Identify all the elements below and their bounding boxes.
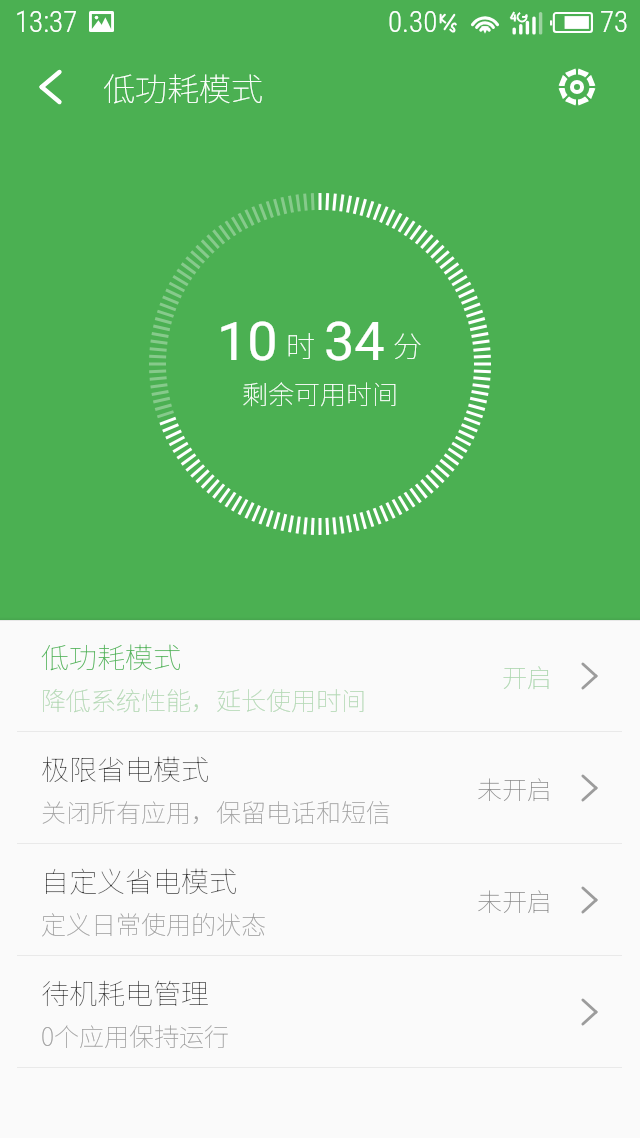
staticText: 0个应用保持运行: [41, 1017, 230, 1053]
staticText: 极限省电模式: [41, 748, 210, 789]
staticText: 时: [286, 323, 316, 365]
staticText: 0.30: [388, 5, 438, 39]
staticText: 定义日常使用的状态: [41, 905, 267, 941]
staticText: 降低系统性能，延长使用时间: [41, 681, 367, 717]
button[interactable]: 低功耗模式: [0, 620, 640, 732]
button[interactable]: Settings: [535, 45, 619, 129]
staticText: 分: [393, 323, 423, 365]
staticText: 剩余可用时间: [242, 374, 399, 412]
staticText: 低功耗模式: [41, 636, 182, 677]
button[interactable]: Back: [18, 45, 82, 129]
staticText: 10: [217, 310, 278, 373]
staticText: 34: [324, 310, 385, 373]
button[interactable]: 极限省电模式: [0, 732, 640, 844]
button[interactable]: 待机耗电管理: [0, 956, 640, 1068]
staticText: 低功耗模式: [103, 64, 264, 110]
staticText: 未开启: [477, 882, 553, 918]
staticText: 自定义省电模式: [41, 860, 238, 901]
staticText: 开启: [502, 658, 553, 694]
staticText: 13:37: [15, 5, 78, 39]
button[interactable]: 自定义省电模式: [0, 844, 640, 956]
staticText: 待机耗电管理: [41, 972, 210, 1013]
staticText: 73: [600, 5, 629, 39]
staticText: 未开启: [477, 770, 553, 806]
staticText: 关闭所有应用，保留电话和短信: [41, 793, 392, 829]
